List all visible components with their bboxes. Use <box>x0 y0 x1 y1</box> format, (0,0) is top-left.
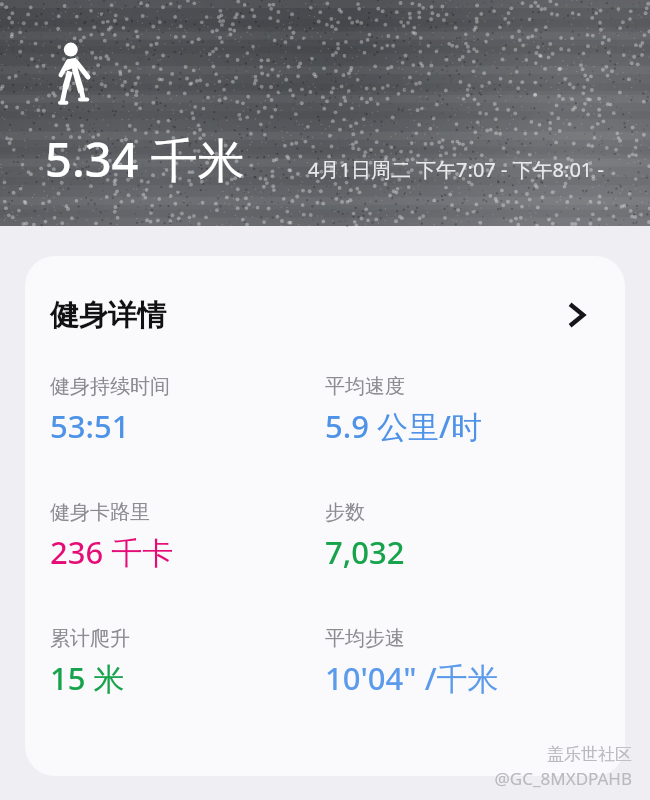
button[interactable]: 步数 <box>325 500 609 573</box>
other: Walking workout <box>52 42 92 108</box>
staticText: 累计爬升 <box>50 626 130 651</box>
staticText: 健身详情 <box>50 297 166 334</box>
staticText: 10'04" /千米 <box>325 657 499 699</box>
staticText: 步数 <box>325 500 365 525</box>
staticText: 健身持续时间 <box>50 374 170 399</box>
staticText: 7,032 <box>325 531 405 573</box>
button[interactable]: 健身详情 <box>25 256 625 374</box>
staticText: 盖乐世社区 <box>547 744 632 765</box>
staticText: 健身卡路里 <box>50 500 150 525</box>
button[interactable]: 平均步速 <box>325 626 609 699</box>
staticText: 4月1日周二 下午7:07 - 下午8:01 - <box>308 156 604 183</box>
button[interactable]: 累计爬升 <box>50 626 325 699</box>
staticText: 平均速度 <box>325 374 405 399</box>
staticText: 5.34 千米 <box>45 127 245 191</box>
staticText: @GC_8MXDPAHB <box>494 767 632 790</box>
staticText: 15 米 <box>50 657 125 699</box>
staticText: 5.9 公里/时 <box>325 405 482 447</box>
staticText: 53:51 <box>50 405 130 447</box>
other: Open workout details <box>557 295 597 335</box>
button[interactable]: 平均速度 <box>325 374 609 447</box>
staticText: 平均步速 <box>325 626 405 651</box>
staticText: 236 千卡 <box>50 531 174 573</box>
button[interactable]: 健身持续时间 <box>50 374 325 447</box>
button[interactable]: 健身卡路里 <box>50 500 325 573</box>
